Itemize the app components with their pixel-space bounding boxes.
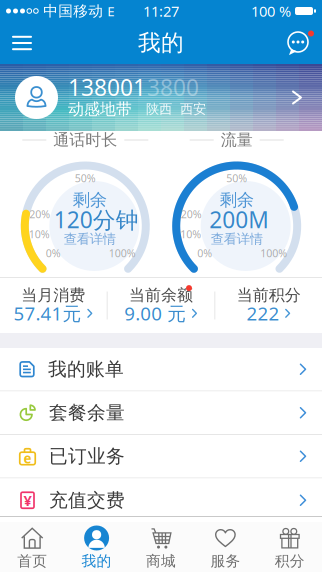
staticText: 当月消费 <box>21 285 85 305</box>
staticText: 100% <box>260 246 287 260</box>
staticText: 10% <box>180 227 201 241</box>
staticText: 当前余额 <box>129 285 193 305</box>
staticText: 222 <box>246 301 279 326</box>
button[interactable]: 查看详情 <box>64 231 116 247</box>
staticText: 查看详情 <box>211 231 263 247</box>
staticText: 流量 <box>221 130 253 150</box>
staticText: 50% <box>226 171 247 185</box>
button[interactable]: 我的 <box>64 517 129 570</box>
staticText: 查看详情 <box>64 231 116 247</box>
staticText: 动感地带 <box>68 99 132 119</box>
button[interactable]: 商城 <box>129 517 193 570</box>
button[interactable]: 当前余额 <box>108 285 214 326</box>
staticText: 57.41元 <box>14 301 82 326</box>
button[interactable]: 积分 <box>258 517 322 570</box>
staticText: 20% <box>29 207 50 221</box>
button[interactable]: 当前积分 <box>215 285 322 326</box>
button[interactable]: 服务 <box>193 517 258 570</box>
staticText: 我的账单 <box>48 358 124 381</box>
staticText: 20% <box>181 207 202 221</box>
staticText: 套餐余量 <box>49 401 125 424</box>
staticText: 已订业务 <box>49 445 125 468</box>
staticText: 200M <box>209 204 269 234</box>
button[interactable]: 查看详情 <box>211 231 263 247</box>
button[interactable]: e <box>0 435 322 477</box>
staticText: 50% <box>75 171 96 185</box>
staticText: E <box>107 2 114 20</box>
staticText: 充值交费 <box>49 489 125 512</box>
staticText: 120分钟 <box>54 204 139 234</box>
staticText: 0% <box>197 246 212 260</box>
staticText: 服务 <box>210 552 240 570</box>
staticText: 陕西 西安 <box>146 101 206 117</box>
button[interactable]: 套餐余量 <box>0 391 322 434</box>
staticText: 100 % <box>251 1 291 21</box>
staticText: 100% <box>109 246 136 260</box>
staticText: 3800 <box>147 72 199 102</box>
staticText: 138001 <box>68 72 146 102</box>
staticText: 剩余 <box>73 189 107 211</box>
staticText: 11:27 <box>143 1 179 21</box>
staticText: 剩余 <box>220 189 254 211</box>
staticText: 中国移动 <box>43 2 103 20</box>
staticText: 通话时长 <box>53 130 117 150</box>
button[interactable]: ¥ <box>0 478 322 522</box>
button[interactable]: 当月消费 <box>0 285 107 326</box>
button[interactable]: 首页 <box>0 517 64 570</box>
staticText: e <box>23 450 31 467</box>
button[interactable]: 菜单 <box>0 28 32 58</box>
staticText: 10% <box>29 227 50 241</box>
staticText: 我的 <box>138 29 184 57</box>
staticText: ¥ <box>23 490 31 510</box>
staticText: 商城 <box>146 552 176 570</box>
staticText: 当前积分 <box>237 285 301 305</box>
button[interactable]: 138001 <box>0 64 322 131</box>
staticText: 我的 <box>82 552 112 570</box>
staticText: 首页 <box>17 552 47 570</box>
button[interactable]: 消息 <box>285 28 322 57</box>
staticText: 积分 <box>275 552 305 570</box>
staticText: 9.00 元 <box>124 301 186 326</box>
button[interactable]: 我的账单 <box>0 348 322 390</box>
staticText: 0% <box>46 246 61 260</box>
